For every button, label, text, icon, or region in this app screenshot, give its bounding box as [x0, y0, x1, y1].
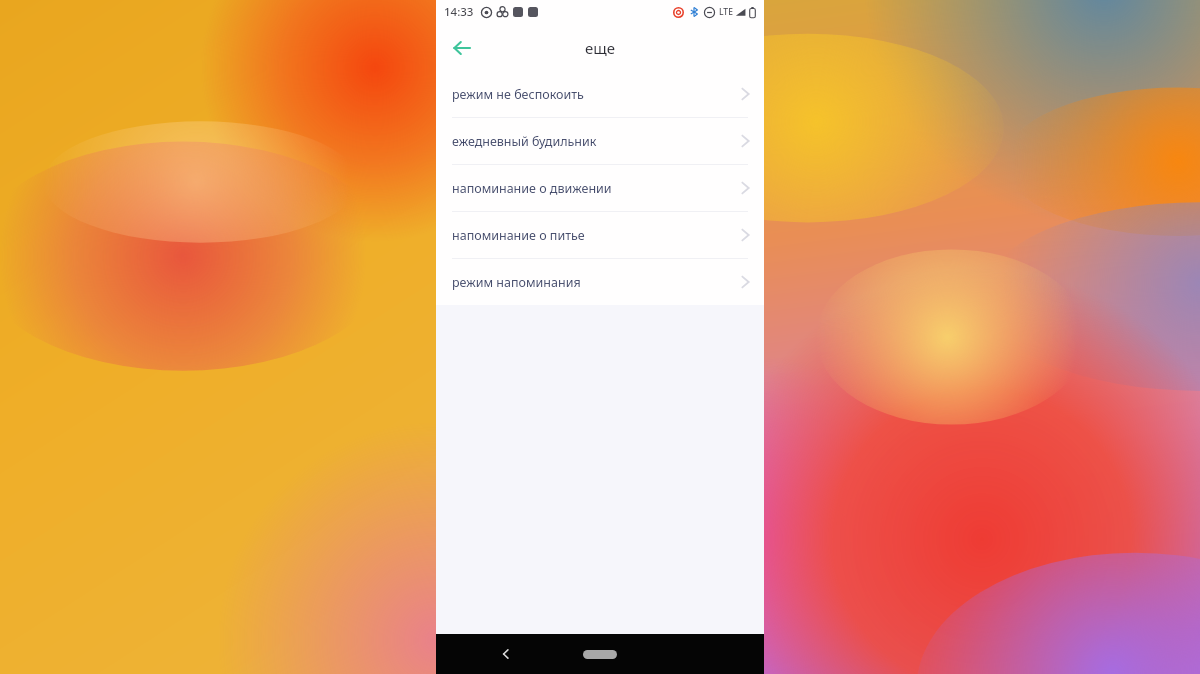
- button[interactable]: ежедневный будильник: [436, 118, 764, 164]
- button[interactable]: режим напоминания: [436, 259, 764, 305]
- staticText: напоминание о движении: [452, 180, 612, 197]
- staticText: режим не беспокоить: [452, 86, 584, 103]
- staticText: режим напоминания: [452, 274, 581, 291]
- staticText: ежедневный будильник: [452, 133, 597, 150]
- button[interactable]: Back: [492, 640, 520, 668]
- staticText: еще: [585, 38, 615, 58]
- button[interactable]: напоминание о движении: [436, 165, 764, 211]
- button[interactable]: Home: [583, 650, 617, 659]
- button[interactable]: Back: [444, 30, 480, 66]
- staticText: LTE: [719, 6, 733, 18]
- staticText: напоминание о питье: [452, 227, 585, 244]
- button[interactable]: режим не беспокоить: [436, 71, 764, 117]
- button[interactable]: напоминание о питье: [436, 212, 764, 258]
- staticText: 14:33: [444, 4, 474, 20]
